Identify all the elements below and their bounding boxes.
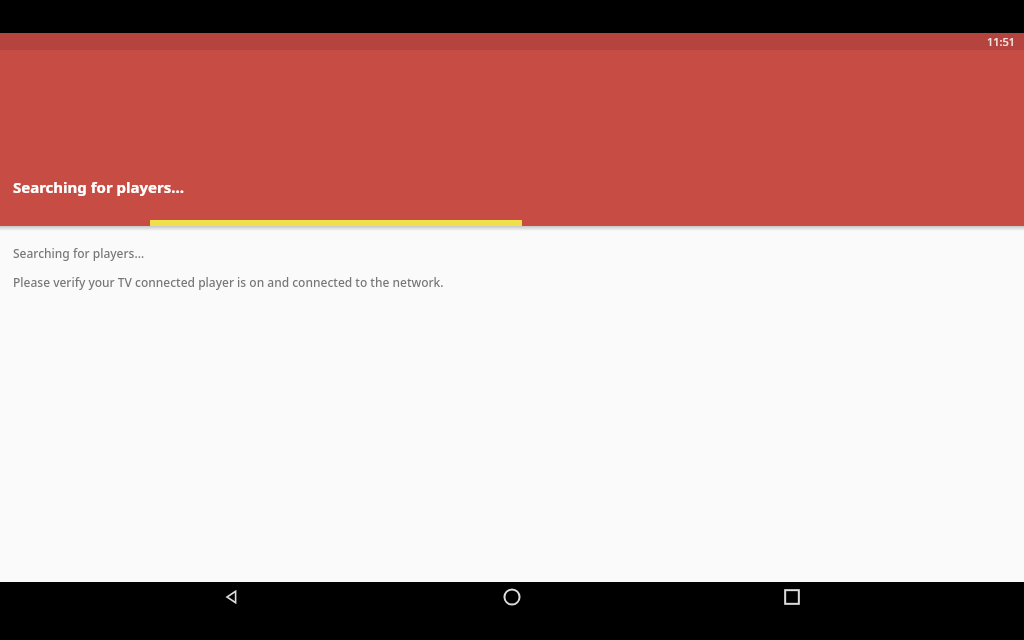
staticText: Searching for players… <box>13 245 145 261</box>
button[interactable]: Back <box>184 582 280 622</box>
button[interactable]: Recent apps <box>744 582 840 622</box>
staticText: 11:51 <box>987 34 1016 49</box>
button[interactable]: Home <box>464 582 560 622</box>
staticText: Searching for players… <box>13 177 185 197</box>
staticText: Please verify your TV connected player i… <box>13 274 444 290</box>
